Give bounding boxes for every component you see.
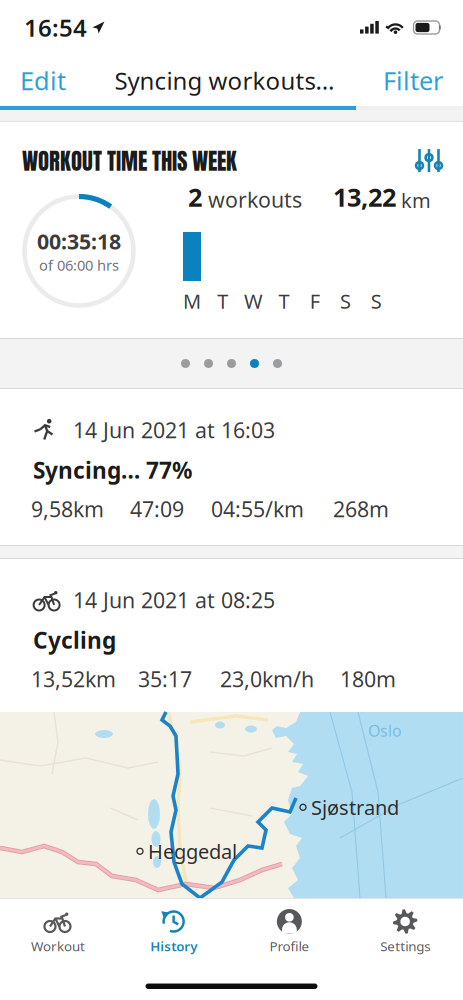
- button[interactable]: History: [116, 902, 232, 960]
- staticText: S: [371, 288, 382, 314]
- button[interactable]: Adjust weekly goal: [415, 147, 443, 175]
- staticText: workouts: [202, 185, 302, 214]
- staticText: 180m: [340, 665, 396, 693]
- staticText: 16:54: [24, 12, 87, 43]
- button[interactable]: Workout: [0, 902, 116, 960]
- button[interactable]: 14 Jun 2021 at 08:25: [0, 559, 463, 712]
- staticText: 14 Jun 2021 at 16:03: [73, 416, 275, 444]
- staticText: Sjøstrand: [311, 794, 399, 821]
- staticText: Settings: [380, 937, 430, 955]
- button[interactable]: Settings: [347, 902, 463, 960]
- staticText: M: [183, 288, 201, 314]
- staticText: Edit: [20, 64, 66, 97]
- staticText: Syncing workouts…: [114, 65, 334, 96]
- staticText: Filter: [383, 64, 443, 97]
- staticText: 13,22: [333, 180, 396, 214]
- staticText: 14 Jun 2021 at 08:25: [73, 586, 275, 614]
- staticText: 2: [188, 180, 202, 214]
- staticText: History: [150, 937, 197, 955]
- staticText: Workout: [31, 937, 85, 955]
- staticText: Cycling: [33, 625, 116, 655]
- staticText: 13,52km: [31, 665, 116, 693]
- staticText: 00:35:18: [37, 227, 121, 255]
- staticText: WORKOUT TIME THIS WEEK: [22, 144, 237, 178]
- staticText: Profile: [269, 937, 309, 955]
- staticText: 35:17: [138, 665, 192, 693]
- staticText: Oslo: [368, 720, 402, 741]
- button[interactable]: 14 Jun 2021 at 16:03: [0, 389, 463, 545]
- staticText: F: [310, 288, 320, 314]
- staticText: 47:09: [130, 495, 184, 523]
- button[interactable]: Profile: [231, 902, 347, 960]
- staticText: of 06:00 hrs: [39, 255, 119, 275]
- staticText: 23,0km/h: [220, 665, 314, 693]
- staticText: 9,58km: [31, 495, 104, 523]
- staticText: Heggedal: [148, 838, 237, 865]
- staticText: km: [396, 187, 431, 214]
- button[interactable]: Filter: [363, 58, 463, 103]
- staticText: Syncing… 77%: [33, 455, 192, 485]
- staticText: T: [217, 288, 228, 314]
- staticText: T: [279, 288, 290, 314]
- staticText: S: [340, 288, 351, 314]
- staticText: 268m: [333, 495, 389, 523]
- button[interactable]: Edit: [0, 58, 86, 103]
- staticText: W: [244, 288, 263, 314]
- staticText: 04:55/km: [211, 495, 304, 523]
